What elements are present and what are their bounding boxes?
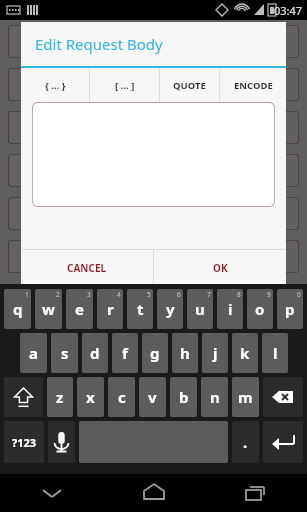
button[interactable]: k	[232, 333, 258, 373]
staticText: 7	[207, 290, 211, 299]
button[interactable]: Hide keyboard	[0, 474, 103, 512]
button[interactable]: h	[172, 333, 198, 373]
staticText: v	[148, 387, 157, 407]
staticText: e	[75, 299, 84, 319]
button[interactable]: u	[187, 289, 213, 329]
staticText: b	[179, 387, 189, 407]
button[interactable]: ENCODE	[220, 68, 286, 102]
staticText: n	[210, 387, 220, 407]
staticText: a	[29, 343, 38, 363]
staticText: 0	[297, 290, 301, 299]
staticText: z	[56, 387, 64, 407]
button[interactable]: q	[4, 289, 31, 329]
button[interactable]: y	[157, 289, 183, 329]
button[interactable]: ?123	[4, 421, 44, 463]
staticText: 8	[237, 290, 241, 299]
staticText: u	[195, 299, 205, 319]
staticText: 9	[267, 290, 271, 299]
staticText: o	[255, 299, 265, 319]
button[interactable]: o	[247, 289, 273, 329]
button[interactable]: Shift	[4, 377, 43, 417]
button[interactable]: f	[112, 333, 138, 373]
staticText: w	[42, 299, 55, 319]
staticText: c	[118, 387, 126, 407]
button[interactable]: d	[82, 333, 108, 373]
button[interactable]: i	[217, 289, 243, 329]
staticText: m	[238, 387, 253, 407]
staticText: q	[13, 299, 23, 319]
staticText: ENCODE	[234, 79, 273, 92]
staticText: j	[213, 343, 218, 363]
button[interactable]: v	[139, 377, 166, 417]
staticText: 03:47	[274, 3, 303, 18]
staticText: 2	[56, 290, 60, 299]
button[interactable]: b	[170, 377, 197, 417]
button[interactable]: a	[20, 333, 47, 373]
staticText: { … }	[45, 79, 66, 92]
staticText: ?123	[12, 435, 37, 450]
staticText: y	[166, 299, 175, 319]
button[interactable]: Home	[103, 474, 205, 512]
button[interactable]: x	[77, 377, 104, 417]
button[interactable]: { … }	[21, 68, 89, 102]
button[interactable]: r	[97, 289, 123, 329]
button[interactable]: [ … ]	[90, 68, 159, 102]
staticText: .	[243, 432, 248, 452]
button[interactable]: j	[202, 333, 228, 373]
button[interactable]: g	[142, 333, 168, 373]
button[interactable]: e	[66, 289, 93, 329]
staticText: 1	[25, 290, 29, 299]
button[interactable]: Recent apps	[205, 474, 307, 512]
staticText: t	[137, 299, 144, 319]
button[interactable]: Enter	[263, 421, 303, 463]
staticText: QUOTE	[173, 79, 206, 92]
staticText: f	[122, 343, 128, 363]
button[interactable]: m	[232, 377, 259, 417]
button[interactable]: Voice input	[48, 421, 75, 463]
staticText: 4	[117, 290, 121, 299]
button[interactable]: Backspace	[263, 377, 303, 417]
staticText: 5	[147, 290, 151, 299]
button[interactable]: .	[232, 421, 259, 463]
button[interactable]: c	[108, 377, 135, 417]
button[interactable]: n	[201, 377, 228, 417]
staticText: CANCEL	[67, 261, 107, 275]
staticText: p	[285, 299, 295, 319]
staticText: s	[61, 343, 69, 363]
staticText: 3	[87, 290, 91, 299]
button[interactable]: l	[262, 333, 288, 373]
staticText: h	[180, 343, 190, 363]
button[interactable]: s	[51, 333, 78, 373]
button[interactable]: QUOTE	[160, 68, 219, 102]
staticText: g	[150, 343, 160, 363]
button[interactable]: CANCEL	[21, 250, 153, 285]
button[interactable]	[32, 102, 275, 207]
button[interactable]: z	[47, 377, 73, 417]
staticText: x	[86, 387, 95, 407]
staticText: k	[240, 343, 250, 363]
button[interactable]: OK	[154, 250, 286, 285]
staticText: d	[90, 343, 100, 363]
staticText: l	[273, 343, 278, 363]
staticText: Edit Request Body	[35, 34, 163, 54]
staticText: OK	[213, 261, 228, 275]
staticText: r	[107, 299, 114, 319]
button[interactable]: p	[277, 289, 303, 329]
button[interactable]: t	[127, 289, 153, 329]
staticText: 6	[177, 290, 181, 299]
button[interactable]: w	[35, 289, 62, 329]
staticText: [ … ]	[115, 79, 135, 92]
staticText: i	[228, 299, 233, 319]
